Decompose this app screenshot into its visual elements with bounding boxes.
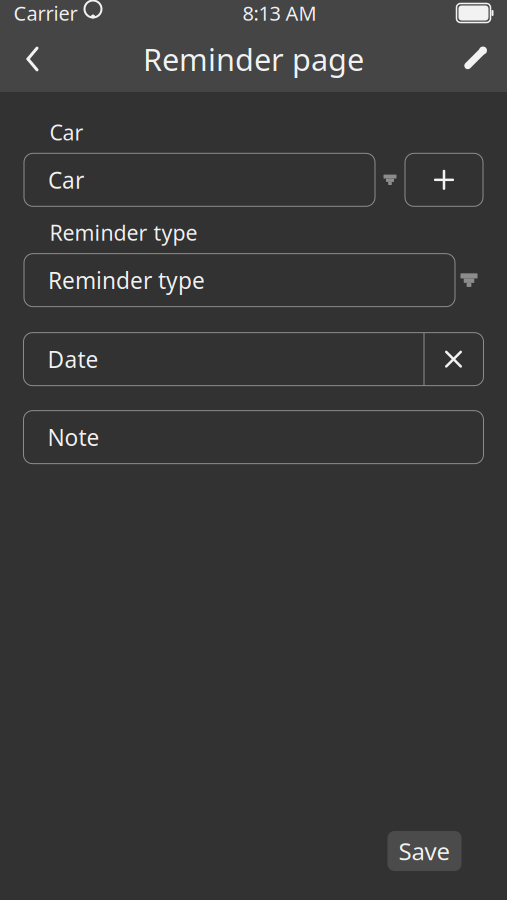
- button[interactable]: Show reminder types: [455, 254, 483, 307]
- staticText: Save: [398, 835, 450, 867]
- staticText: Car: [49, 118, 83, 146]
- button[interactable]: Save: [387, 831, 461, 871]
- button[interactable]: Note: [23, 411, 483, 464]
- staticText: Reminder page: [143, 39, 364, 79]
- button[interactable]: Reminder type: [24, 254, 455, 307]
- button[interactable]: Add car: [405, 153, 483, 206]
- staticText: Car: [48, 165, 84, 195]
- button[interactable]: Show car options: [375, 153, 405, 206]
- staticText: Date: [47, 344, 98, 374]
- button[interactable]: Back: [5, 32, 59, 86]
- button[interactable]: Clear date: [423, 333, 483, 386]
- staticText: 8:13 AM: [242, 0, 316, 26]
- button[interactable]: Edit: [447, 32, 501, 86]
- staticText: Carrier: [13, 0, 77, 26]
- staticText: Reminder type: [48, 265, 205, 295]
- button[interactable]: Date: [23, 333, 423, 386]
- staticText: Reminder type: [49, 218, 197, 247]
- button[interactable]: Car: [24, 153, 375, 206]
- staticText: Note: [47, 422, 99, 452]
